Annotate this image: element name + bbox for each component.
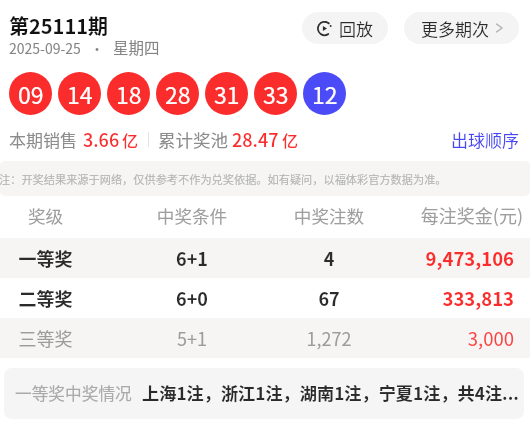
other: 回放 <box>317 21 332 36</box>
staticText: 9,473,106 <box>365 245 514 272</box>
staticText: 更多期次 <box>421 16 489 41</box>
staticText: 4 <box>293 245 365 271</box>
staticText: 上海1注，浙江1注，湖南1注，宁夏1注，共4注... <box>142 380 519 405</box>
staticText: 18 <box>116 77 142 110</box>
staticText: 333,813 <box>365 285 514 312</box>
staticText: 一等奖中奖情况 <box>15 381 132 405</box>
button[interactable]: 回放 <box>302 12 388 44</box>
staticText: 6+1 <box>91 245 293 271</box>
staticText: 亿 <box>282 128 299 151</box>
staticText: 二等奖 <box>0 285 91 311</box>
staticText: 亿 <box>122 128 139 151</box>
staticText: 12 <box>312 77 338 110</box>
staticText: 本期销售 <box>9 127 77 152</box>
staticText: 2025-09-25 <box>9 38 81 58</box>
staticText: 每注奖金(元) <box>374 202 523 228</box>
button[interactable]: 一等奖中奖情况 <box>4 368 524 419</box>
button[interactable]: 更多期次 <box>404 12 519 44</box>
staticText: 累计奖池 <box>158 127 228 152</box>
staticText: 奖级 <box>0 203 91 228</box>
staticText: 33 <box>263 77 289 110</box>
staticText: 6+0 <box>91 285 293 311</box>
staticText: · <box>90 38 104 58</box>
staticText: 09 <box>18 77 44 110</box>
staticText: 31 <box>214 77 240 110</box>
staticText: 第25111期 <box>9 11 108 40</box>
button[interactable]: 出球顺序 <box>451 127 519 152</box>
staticText: 3,000 <box>365 325 514 352</box>
staticText: 星期四 <box>113 36 160 58</box>
staticText: 中奖条件 <box>91 203 293 228</box>
staticText: 28 <box>165 77 191 110</box>
staticText: 3.66 <box>83 126 120 152</box>
staticText: 5+1 <box>91 325 293 351</box>
staticText: 28.47 <box>232 126 279 152</box>
staticText: 中奖注数 <box>293 203 365 228</box>
staticText: 回放 <box>339 16 373 41</box>
staticText: 注：开奖结果来源于网络，仅供参考不作为兑奖依据。如有疑问，以福体彩官方数据为准。 <box>0 171 447 187</box>
staticText: 67 <box>293 285 365 311</box>
staticText: 三等奖 <box>0 325 91 351</box>
staticText: 1,272 <box>293 325 365 351</box>
staticText: 14 <box>67 77 93 110</box>
staticText: 一等奖 <box>0 245 91 271</box>
